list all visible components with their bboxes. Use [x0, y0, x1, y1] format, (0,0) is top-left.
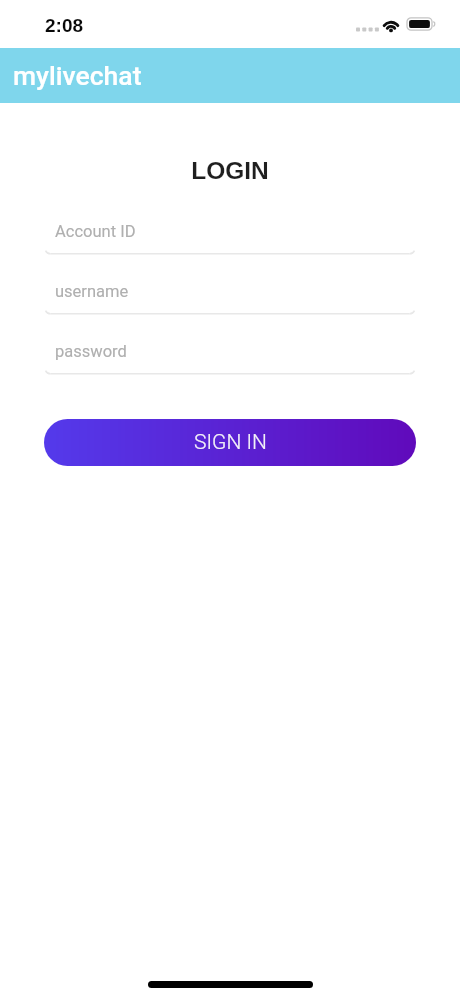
staticText: Account ID — [55, 222, 136, 241]
staticText: 2:08 — [45, 15, 84, 36]
button[interactable]: username — [45, 267, 415, 317]
staticText: password — [55, 342, 127, 361]
button[interactable]: SIGN IN — [44, 419, 416, 466]
staticText: mylivechat — [13, 60, 142, 91]
button[interactable]: Account ID — [45, 207, 415, 257]
button[interactable]: password — [45, 327, 415, 377]
button[interactable]: mylivechat — [0, 48, 460, 103]
staticText: username — [55, 282, 129, 301]
staticText: SIGN IN — [194, 430, 267, 455]
other: Signal, Wi-Fi and battery status — [354, 16, 440, 34]
staticText: LOGIN — [0, 157, 460, 184]
